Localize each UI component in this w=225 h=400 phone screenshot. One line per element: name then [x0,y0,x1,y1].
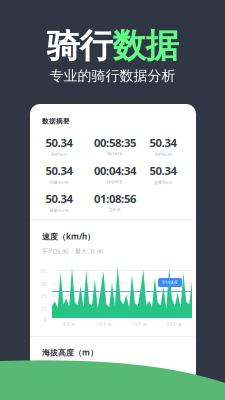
staticText: 01:08:56 [94,191,136,206]
staticText: 数据 [112,25,178,67]
staticText: 5千米 [63,321,76,327]
staticText: 38 [41,281,47,287]
staticText: 骑行时长 [107,151,123,156]
staticText: 13 [41,306,47,312]
staticText: 专业的骑行数据分析 [49,67,175,85]
staticText: 里程(km) [51,151,67,157]
staticText: 总爬升(m) [154,179,172,185]
staticText: 海拔高度（m） [42,347,98,358]
staticText: 休息时长 [107,179,123,184]
staticText: 00:58:35 [94,135,136,150]
staticText: 速度（km/h） [42,231,95,242]
staticText: 总时长 [109,207,121,212]
staticText: 25 [41,293,47,299]
staticText: 数据摘要 [42,117,70,125]
staticText: 平均速度 [162,280,178,285]
staticText: 消耗(kcal) [154,151,171,157]
staticText: 50.34 [149,135,176,150]
staticText: 10千米 [96,321,112,327]
staticText: 最速(km/h) [49,207,68,213]
staticText: 20千米 [166,321,182,327]
staticText: 00:04:34 [94,163,136,178]
staticText: 50.34 [45,163,72,178]
staticText: 骑行 [46,25,112,67]
staticText: 51 [41,268,47,274]
staticText: 平均25.90 [42,247,68,255]
staticText: 均速(km/h) [49,179,68,185]
staticText: 50.34 [45,191,72,206]
staticText: 最大:31.90 [75,247,103,255]
staticText: 0 [44,316,47,322]
staticText: 15千米 [131,321,147,327]
staticText: 50.34 [149,163,176,178]
staticText: 50.34 [45,135,72,150]
